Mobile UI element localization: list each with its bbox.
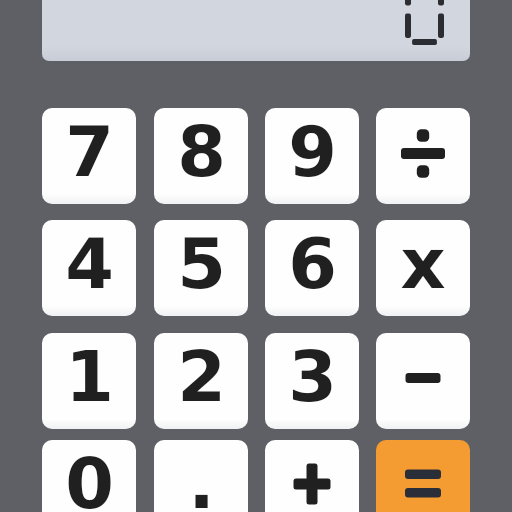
button[interactable]: 7 bbox=[42, 108, 136, 204]
staticText: x bbox=[400, 223, 446, 304]
staticText: 9 bbox=[288, 111, 337, 192]
button[interactable]: minus bbox=[376, 333, 470, 429]
staticText: 5 bbox=[177, 223, 226, 304]
button[interactable]: 3 bbox=[265, 333, 359, 429]
staticText: 4 bbox=[65, 223, 114, 304]
button[interactable]: 5 bbox=[154, 220, 248, 316]
button[interactable]: 8 bbox=[154, 108, 248, 204]
button[interactable]: 2 bbox=[154, 333, 248, 429]
button[interactable]: 4 bbox=[42, 220, 136, 316]
button[interactable]: plus bbox=[265, 440, 359, 512]
button[interactable]: equals bbox=[376, 440, 470, 512]
staticText: . bbox=[188, 443, 215, 512]
button[interactable]: divide bbox=[376, 108, 470, 204]
staticText: 1 bbox=[65, 336, 114, 417]
button[interactable]: decimal point bbox=[154, 440, 248, 512]
staticText: 8 bbox=[177, 111, 226, 192]
button[interactable]: 6 bbox=[265, 220, 359, 316]
staticText: 7 bbox=[65, 111, 114, 192]
staticText: 6 bbox=[288, 223, 337, 304]
staticText: 0 bbox=[65, 443, 114, 512]
button[interactable]: 0 bbox=[42, 440, 136, 512]
button[interactable]: 9 bbox=[265, 108, 359, 204]
staticText: 2 bbox=[177, 336, 226, 417]
staticText: 3 bbox=[288, 336, 337, 417]
button[interactable]: multiply bbox=[376, 220, 470, 316]
button[interactable]: 1 bbox=[42, 333, 136, 429]
